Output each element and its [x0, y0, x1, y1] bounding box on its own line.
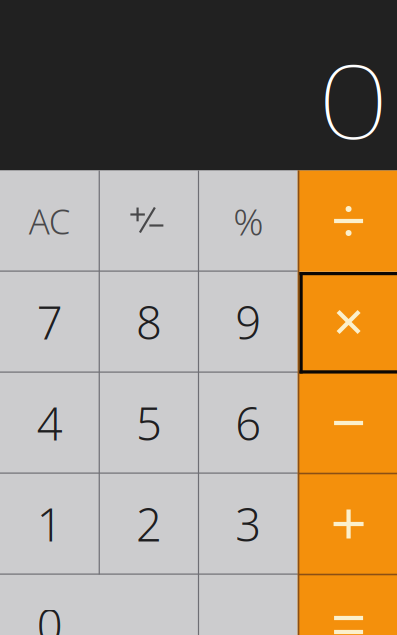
button[interactable]: 6: [198, 372, 298, 473]
staticText: AC: [29, 198, 71, 244]
staticText: 3: [235, 494, 261, 554]
button[interactable]: 0: [0, 574, 198, 635]
staticText: 7: [37, 292, 63, 352]
button[interactable]: Divide: [298, 170, 397, 271]
button[interactable]: Toggle sign: [99, 170, 198, 271]
staticText: %: [233, 196, 263, 246]
staticText: 6: [235, 393, 261, 453]
staticText: 0: [37, 595, 63, 635]
button[interactable]: 8: [99, 271, 198, 372]
button[interactable]: Equals: [298, 574, 397, 635]
button[interactable]: 9: [198, 271, 298, 372]
button[interactable]: 1: [0, 473, 99, 574]
button[interactable]: 3: [198, 473, 298, 574]
button[interactable]: 2: [99, 473, 198, 574]
button[interactable]: 4: [0, 372, 99, 473]
button[interactable]: 5: [99, 372, 198, 473]
staticText: 1: [37, 494, 63, 554]
button[interactable]: .: [198, 574, 298, 635]
staticText: 0: [324, 32, 382, 167]
button[interactable]: %: [198, 170, 298, 271]
staticText: 5: [136, 393, 162, 453]
staticText: 9: [235, 292, 261, 352]
button[interactable]: AC: [0, 170, 99, 271]
button[interactable]: Subtract: [298, 372, 397, 473]
button[interactable]: 7: [0, 271, 99, 372]
staticText: 8: [136, 292, 162, 352]
button[interactable]: Multiply: [298, 271, 397, 372]
button[interactable]: Add: [298, 473, 397, 574]
staticText: 4: [37, 393, 63, 453]
staticText: 2: [136, 494, 162, 554]
